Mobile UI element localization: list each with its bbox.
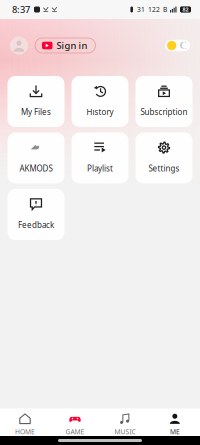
button[interactable]: ME: [150, 408, 200, 436]
staticText: Sign in: [56, 39, 87, 52]
button[interactable]: Subscription: [135, 76, 192, 127]
staticText: B: [163, 5, 167, 14]
staticText: My Files: [21, 107, 51, 117]
staticText: HOME: [15, 427, 35, 436]
button[interactable]: Toggle appearance: [165, 40, 190, 51]
staticText: MUSIC: [114, 427, 135, 436]
button[interactable]: Playlist: [71, 132, 128, 183]
button[interactable]: History: [71, 76, 128, 127]
staticText: 82: [182, 6, 188, 13]
button[interactable]: MUSIC: [100, 408, 150, 436]
staticText: Settings: [148, 163, 179, 174]
staticText: Feedback: [18, 220, 54, 230]
staticText: 31: [137, 5, 145, 14]
staticText: AKMODS: [19, 163, 52, 174]
staticText: Playlist: [87, 163, 113, 174]
button[interactable]: GAME: [50, 408, 100, 436]
staticText: 8:37: [12, 3, 30, 16]
staticText: 122: [148, 5, 160, 14]
staticText: History: [86, 107, 113, 117]
button[interactable]: Sign in: [35, 38, 95, 53]
staticText: Subscription: [140, 107, 187, 117]
button[interactable]: Settings: [135, 132, 192, 183]
button[interactable]: AKMODS: [7, 132, 64, 183]
staticText: GAME: [65, 427, 84, 436]
button[interactable]: Feedback: [7, 189, 64, 240]
button[interactable]: Account: [10, 36, 28, 54]
button[interactable]: HOME: [0, 408, 50, 436]
button[interactable]: My Files: [7, 76, 64, 127]
staticText: ME: [170, 427, 180, 436]
